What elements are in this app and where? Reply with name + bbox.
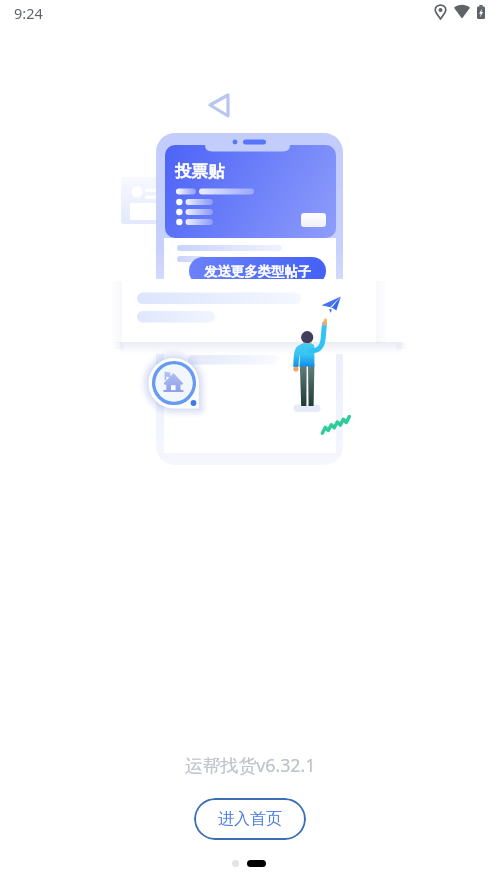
staticText: 运帮找货v6.32.1	[185, 753, 316, 777]
staticText: 9:24	[14, 3, 43, 23]
other: Wifi	[454, 6, 470, 18]
staticText: 发送更多类型帖子	[204, 263, 312, 280]
staticText: 投票贴	[175, 161, 225, 182]
other: Battery	[477, 5, 485, 19]
button[interactable]: 进入首页	[194, 798, 306, 840]
other: Location	[435, 5, 446, 19]
staticText: 进入首页	[218, 809, 282, 829]
button[interactable]: 发送更多类型帖子	[189, 257, 326, 285]
button[interactable]: Home	[247, 860, 266, 867]
